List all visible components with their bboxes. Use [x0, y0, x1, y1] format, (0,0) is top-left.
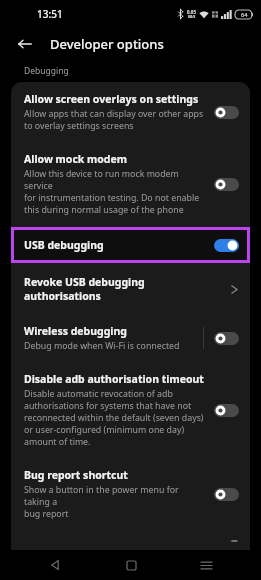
button[interactable]: Back	[35, 550, 75, 580]
button[interactable]: Allow mock modem	[11, 142, 250, 226]
staticText: Allow apps that can display over other a…	[24, 108, 204, 132]
button[interactable]: USB debugging	[14, 230, 247, 260]
button[interactable]: Off	[214, 106, 239, 119]
staticText: 64	[241, 11, 248, 18]
staticText: 0.05	[187, 9, 196, 15]
staticText: Debug mode when Wi-Fi is connected	[24, 340, 180, 352]
button[interactable]: Off	[214, 488, 239, 501]
button[interactable]: On	[214, 239, 239, 252]
staticText: 13:51	[37, 7, 63, 21]
staticText: USB debugging	[24, 238, 214, 252]
button[interactable]: Bug report shortcut	[11, 458, 250, 530]
staticText: Developer options	[50, 35, 164, 53]
staticText: Allow screen overlays on settings	[24, 92, 199, 106]
staticText: Wireless debugging	[24, 324, 127, 338]
button[interactable]: Back	[12, 31, 38, 57]
button[interactable]: Revoke USB debugging authorisations	[11, 264, 250, 314]
staticText: Allow mock modem	[24, 152, 127, 166]
staticText: Disable automatic revocation of adb auth…	[24, 388, 204, 448]
staticText: Debugging	[24, 65, 69, 77]
staticText: Bug report shortcut	[24, 468, 128, 482]
staticText: Show a button in the power menu for taki…	[24, 484, 206, 520]
button[interactable]: Allow screen overlays on settings	[11, 82, 250, 142]
button[interactable]: Off	[214, 332, 239, 345]
button[interactable]: Off	[214, 404, 239, 417]
staticText: Disable adb authorisation timeout	[24, 372, 204, 386]
button[interactable]: Disable adb authorisation timeout	[11, 362, 250, 458]
button[interactable]: Recent apps	[186, 550, 226, 580]
button[interactable]: Select mock location app	[11, 530, 250, 550]
staticText: Allow this device to run mock modem serv…	[24, 168, 206, 216]
button[interactable]: Wireless debugging	[11, 314, 250, 362]
staticText: KB/S	[188, 15, 196, 19]
staticText: Revoke USB debugging authorisations	[24, 275, 224, 303]
button[interactable]: Home	[111, 550, 151, 580]
button[interactable]: Off	[214, 178, 239, 191]
